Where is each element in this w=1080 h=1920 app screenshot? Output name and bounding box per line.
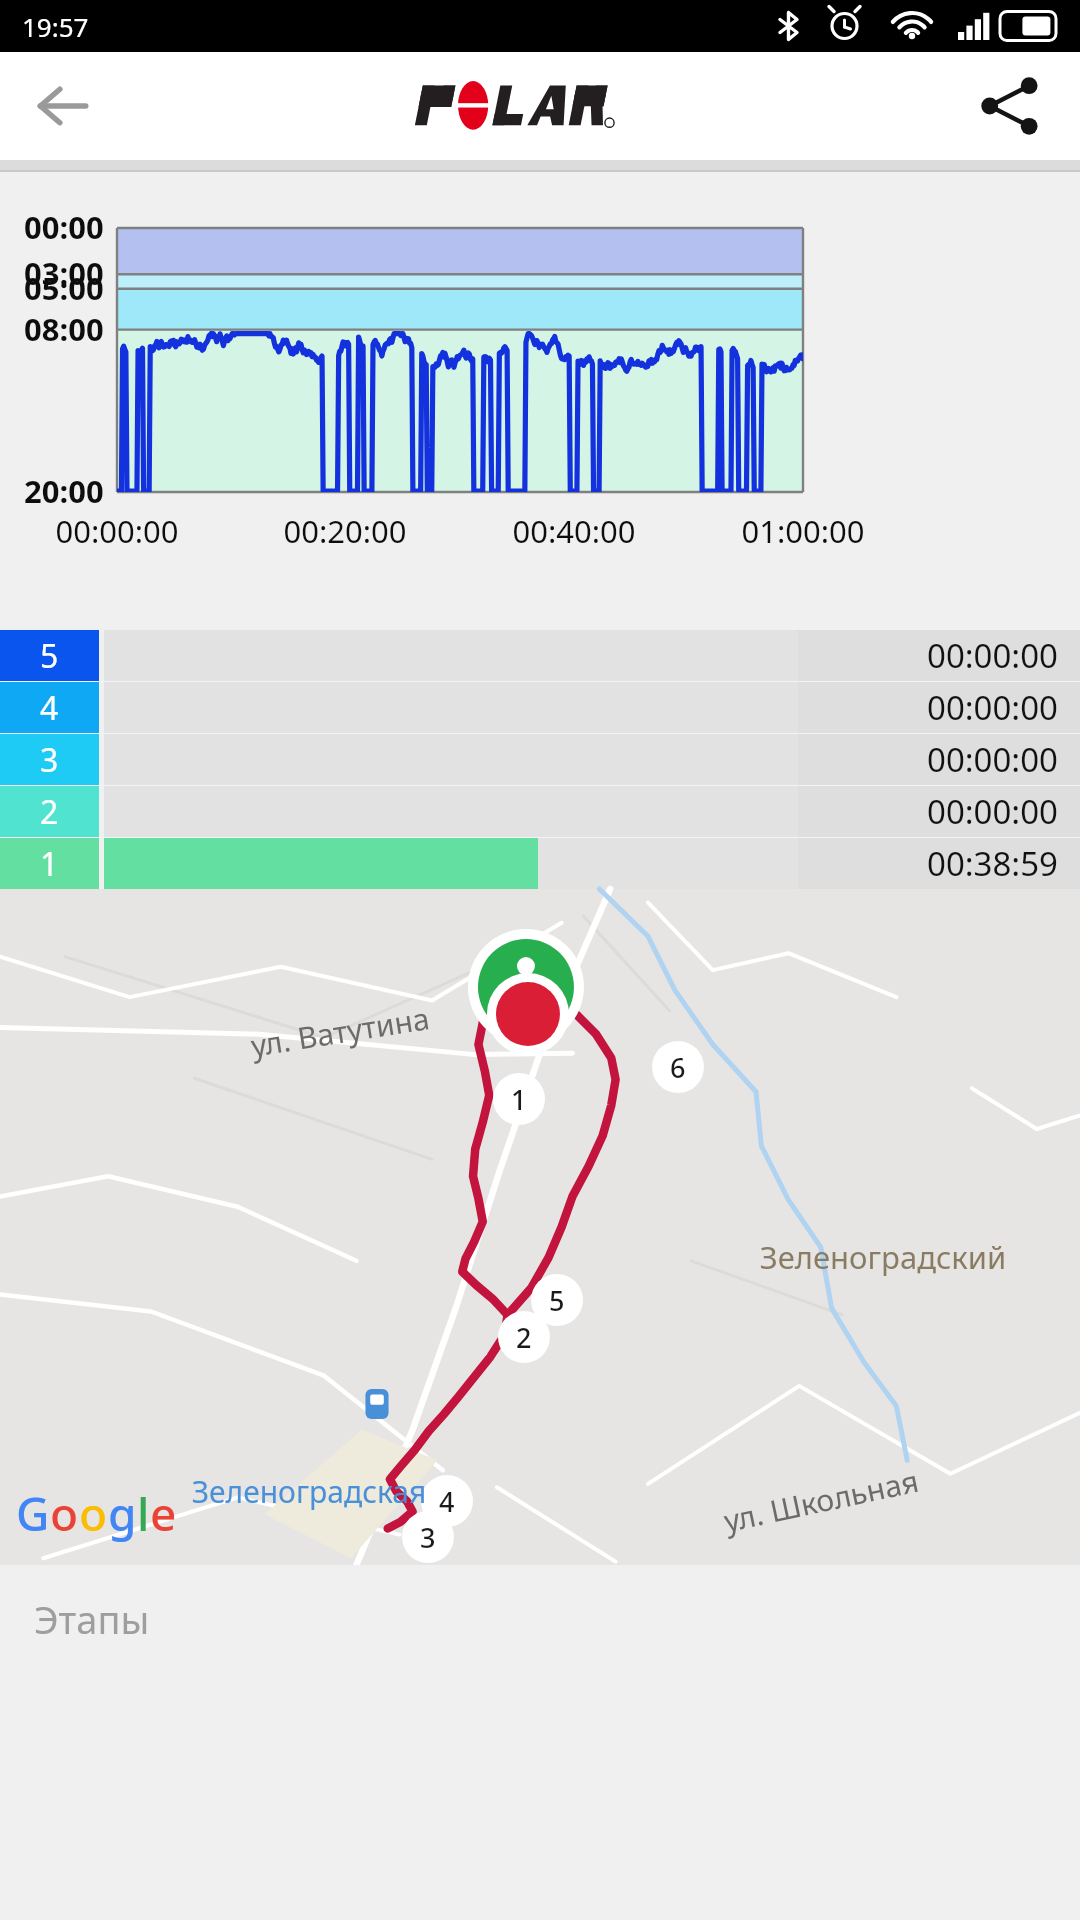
button[interactable]: Route map <box>0 889 1080 1565</box>
staticText: 4 <box>439 1483 455 1520</box>
staticText: 00:00 <box>24 206 104 248</box>
staticText: 00:20:00 <box>235 510 455 552</box>
staticText: g <box>108 1482 137 1545</box>
staticText: l <box>137 1482 150 1545</box>
staticText: 00:00:00 <box>927 789 1058 834</box>
button[interactable]: 1 <box>493 1073 545 1125</box>
button[interactable]: 5 <box>531 1274 583 1326</box>
button[interactable]: 4 <box>0 682 1080 733</box>
button[interactable]: 4 <box>421 1475 473 1527</box>
button[interactable]: Share <box>966 62 1054 150</box>
button[interactable]: 1 <box>0 838 1080 889</box>
staticText: 3 <box>40 738 59 782</box>
staticText: 00:40:00 <box>464 510 684 552</box>
button[interactable]: 3 <box>0 734 1080 785</box>
staticText: 6 <box>670 1049 686 1086</box>
staticText: 20:00 <box>24 470 104 512</box>
button[interactable]: 3 <box>402 1511 454 1563</box>
staticText: o <box>50 1482 79 1545</box>
button[interactable]: 2 <box>0 786 1080 837</box>
staticText: 08:00 <box>24 308 104 350</box>
staticText: 4 <box>40 686 59 730</box>
staticText: 5 <box>40 634 59 678</box>
staticText: 1 <box>511 1081 527 1118</box>
staticText: ул. Школьная <box>655 1446 987 1555</box>
staticText: o <box>79 1482 108 1545</box>
staticText: 00:00:00 <box>927 633 1058 678</box>
button[interactable]: Back <box>18 62 106 150</box>
button[interactable]: 6 <box>652 1041 704 1093</box>
staticText: 00:00:00 <box>7 510 227 552</box>
staticText: 00:00:00 <box>927 737 1058 782</box>
button[interactable]: 2 <box>498 1311 550 1363</box>
staticText: 03:00 <box>24 252 104 294</box>
staticText: ул. Ватутина <box>174 985 506 1077</box>
staticText: 2 <box>516 1319 532 1356</box>
staticText: 3 <box>420 1519 436 1556</box>
staticText: 1 <box>40 842 59 886</box>
staticText: Этапы <box>34 1593 150 1645</box>
staticText: e <box>150 1482 177 1545</box>
staticText: 00:00:00 <box>927 685 1058 730</box>
staticText: Зеленоградский <box>718 1236 1048 1278</box>
button[interactable]: 5 <box>0 630 1080 681</box>
staticText: G <box>16 1482 50 1545</box>
staticText: 05:00 <box>24 267 104 309</box>
staticText: 00:38:59 <box>927 841 1058 886</box>
staticText: 5 <box>549 1282 565 1319</box>
staticText: 01:00:00 <box>693 510 913 552</box>
staticText: 19:57 <box>22 9 89 44</box>
staticText: Зеленоградская <box>144 1471 474 1512</box>
staticText: 2 <box>40 790 59 834</box>
